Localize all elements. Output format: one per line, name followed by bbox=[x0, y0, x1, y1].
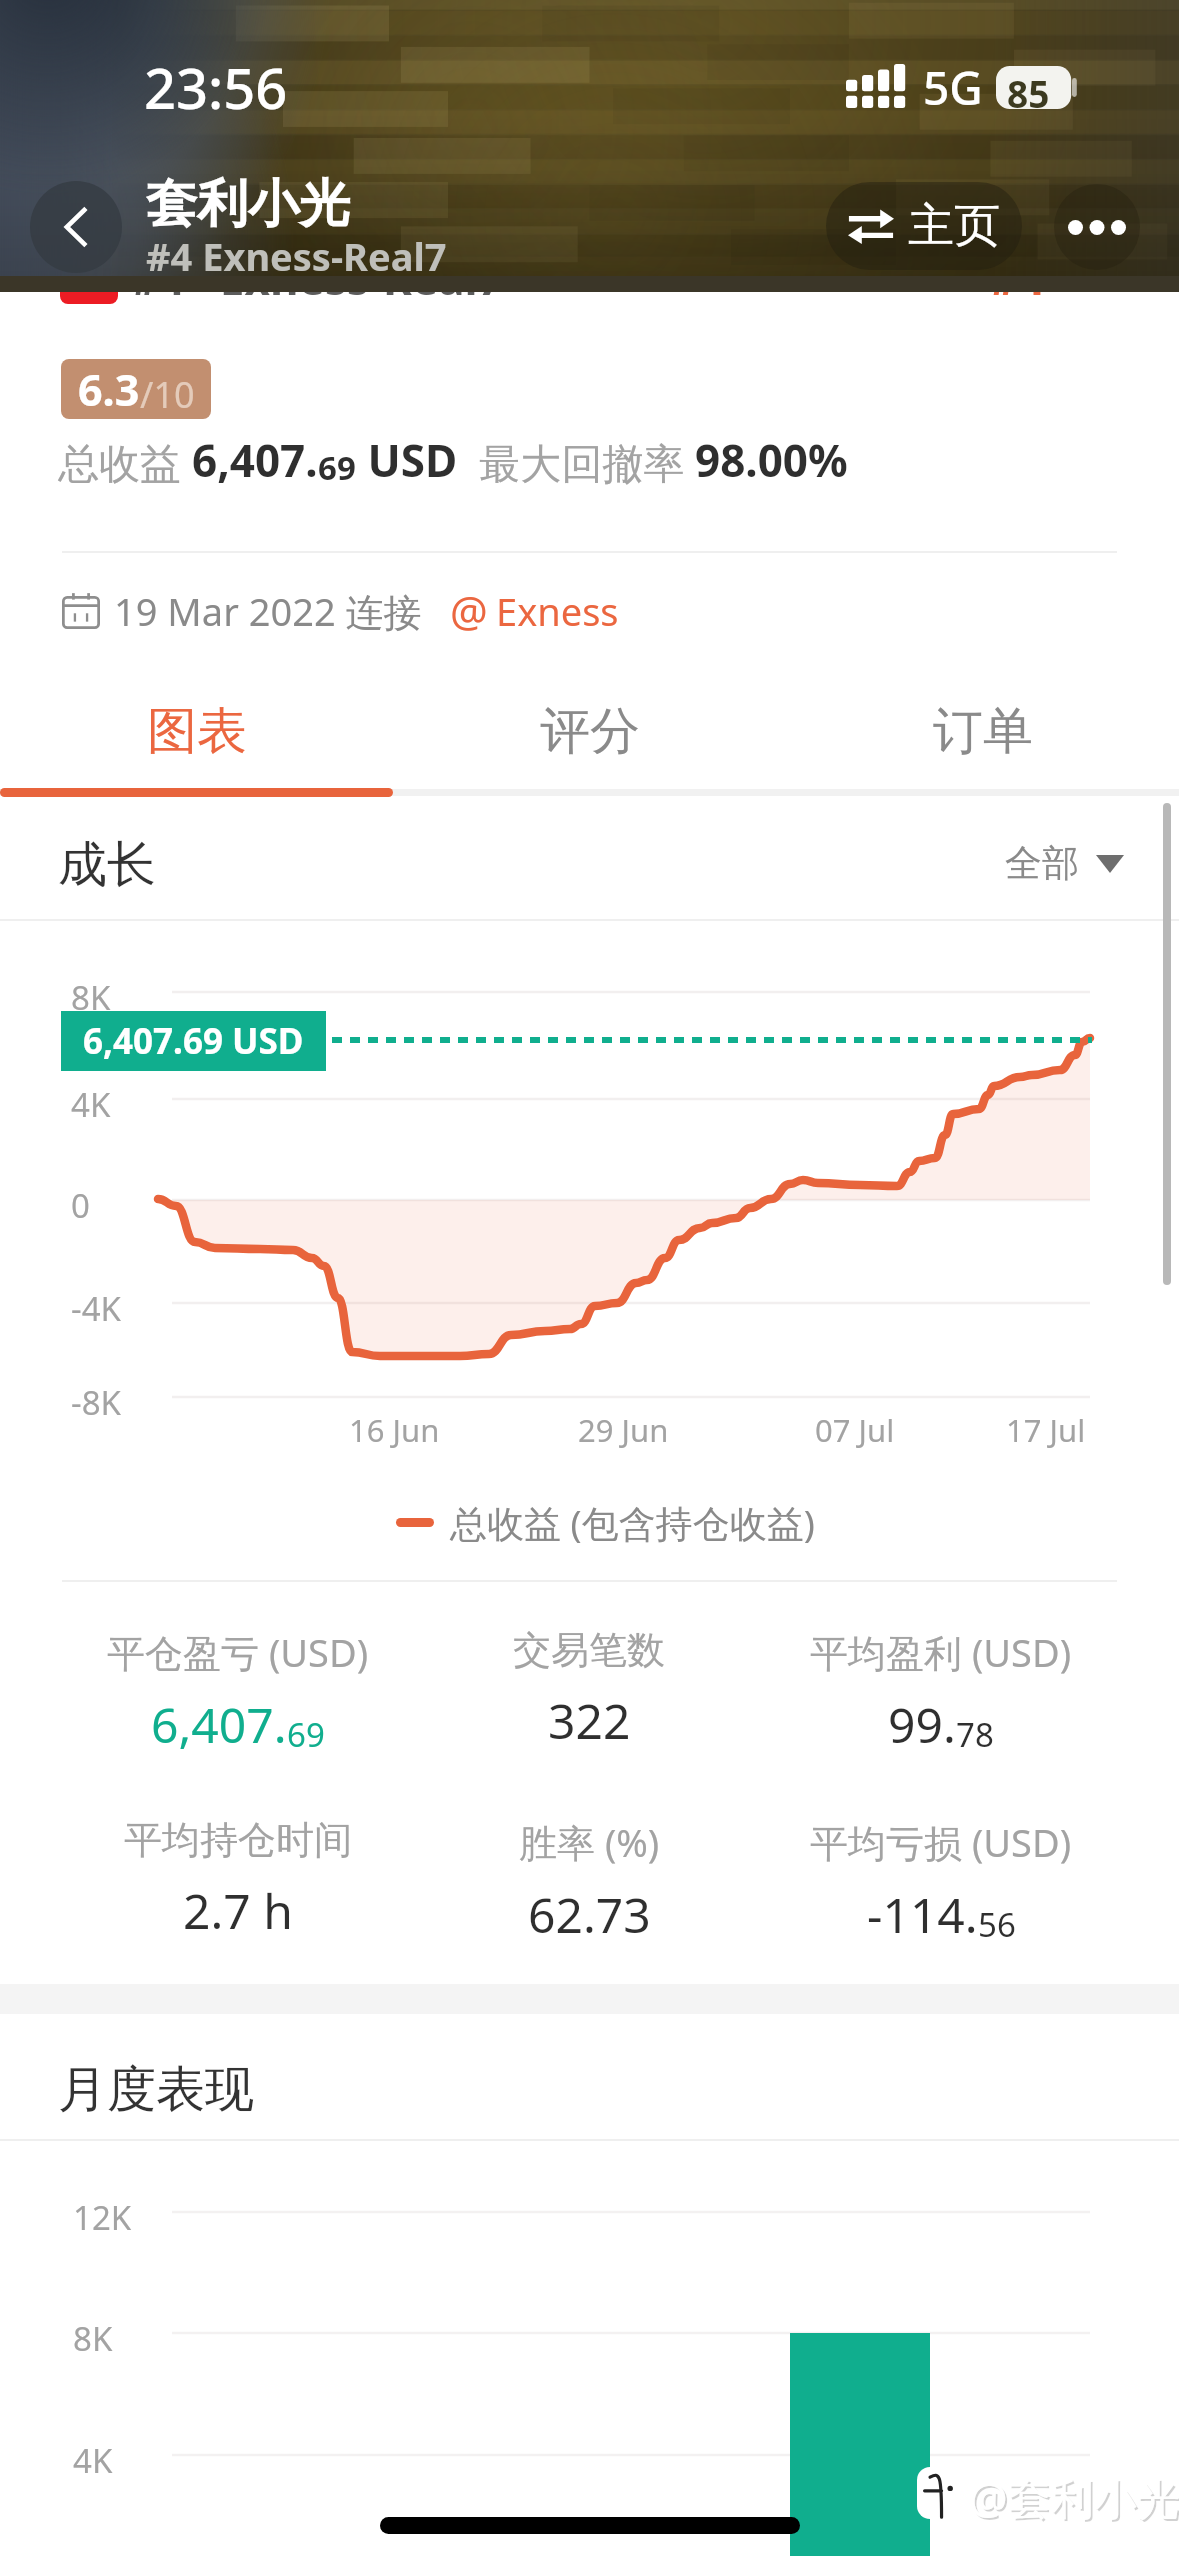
staticText: 平均持仓时间 bbox=[124, 1816, 352, 1864]
staticText: 6,407. bbox=[192, 430, 318, 490]
staticText: #4 · Exness-Real7 bbox=[131, 248, 503, 308]
staticText: 16 Jun bbox=[349, 1409, 440, 1451]
staticText: 平均亏损 (USD) bbox=[810, 1816, 1072, 1868]
staticText: 99. bbox=[888, 1692, 956, 1757]
staticText: @ bbox=[450, 582, 488, 639]
staticText: 平均盈利 (USD) bbox=[810, 1626, 1072, 1678]
staticText: 29 Jun bbox=[578, 1409, 669, 1451]
button[interactable]: 主页 bbox=[826, 182, 1022, 270]
button[interactable]: 评分 bbox=[393, 682, 786, 781]
staticText: 6,407. bbox=[151, 1692, 287, 1757]
staticText: 月度表现 bbox=[58, 2059, 254, 2121]
staticText: 主页 bbox=[908, 197, 1000, 255]
staticText: 23:56 bbox=[144, 49, 288, 125]
staticText: 85 bbox=[1007, 68, 1050, 118]
button[interactable]: 订单 bbox=[786, 682, 1179, 781]
staticText: 69 bbox=[318, 445, 356, 490]
staticText: 6,407.69 USD bbox=[83, 1017, 304, 1065]
staticText: 69 bbox=[287, 1712, 325, 1757]
staticText: 56 bbox=[978, 1902, 1016, 1947]
staticText: 全部 bbox=[1005, 840, 1079, 887]
staticText: USD bbox=[356, 430, 458, 490]
staticText: 4K bbox=[73, 2438, 113, 2483]
staticText: 订单 bbox=[933, 700, 1033, 763]
staticText: 平仓盈亏 (USD) bbox=[107, 1626, 369, 1678]
staticText: 6.3 bbox=[78, 360, 140, 419]
staticText: 12K bbox=[73, 2195, 132, 2240]
staticText: 总收益 (包含持仓收益) bbox=[450, 1497, 815, 1548]
staticText: 胜率 (%) bbox=[519, 1816, 660, 1868]
button[interactable]: 全部 bbox=[1005, 840, 1124, 887]
staticText: -114. bbox=[867, 1882, 978, 1947]
staticText: #4 bbox=[989, 246, 1046, 309]
staticText: 62.73 bbox=[528, 1882, 651, 1947]
button[interactable]: 图表 bbox=[0, 682, 393, 781]
button[interactable]: Back bbox=[30, 181, 122, 273]
button[interactable]: More options bbox=[1054, 184, 1140, 270]
button[interactable]: @ bbox=[450, 582, 619, 639]
staticText: 8K bbox=[71, 975, 111, 1020]
staticText: -8K bbox=[71, 1380, 121, 1425]
staticText: 8K bbox=[73, 2316, 113, 2361]
staticText: @套利小光 bbox=[971, 2470, 1179, 2529]
staticText: 图表 bbox=[147, 700, 247, 763]
staticText: 98.00% bbox=[695, 430, 848, 490]
staticText: 总收益 bbox=[58, 434, 192, 490]
staticText: 322 bbox=[548, 1688, 631, 1753]
staticText: 最大回撤率 bbox=[458, 434, 695, 490]
staticText: 交易笔数 bbox=[513, 1626, 665, 1674]
staticText: /10 bbox=[140, 370, 195, 419]
staticText: @套利小光 bbox=[969, 2468, 1179, 2527]
staticText: #4 Exness-Real7 bbox=[146, 230, 447, 282]
button[interactable]: 6.3 bbox=[61, 359, 211, 419]
staticText: 17 Jul bbox=[1006, 1409, 1086, 1451]
staticText: 19 Mar 2022 连接 bbox=[114, 585, 422, 637]
staticText: Exness bbox=[496, 585, 619, 637]
staticText: 07 Jul bbox=[815, 1409, 895, 1451]
staticText: -4K bbox=[71, 1286, 121, 1331]
staticText: 2.7 h bbox=[183, 1878, 293, 1943]
staticText: 5G bbox=[923, 56, 983, 119]
staticText: 评分 bbox=[540, 700, 640, 763]
staticText: 成长 bbox=[58, 834, 156, 896]
staticText: 4K bbox=[71, 1082, 111, 1127]
staticText: 0 bbox=[71, 1183, 90, 1228]
staticText: 78 bbox=[956, 1712, 994, 1757]
staticText: 套利小光 bbox=[146, 172, 350, 236]
